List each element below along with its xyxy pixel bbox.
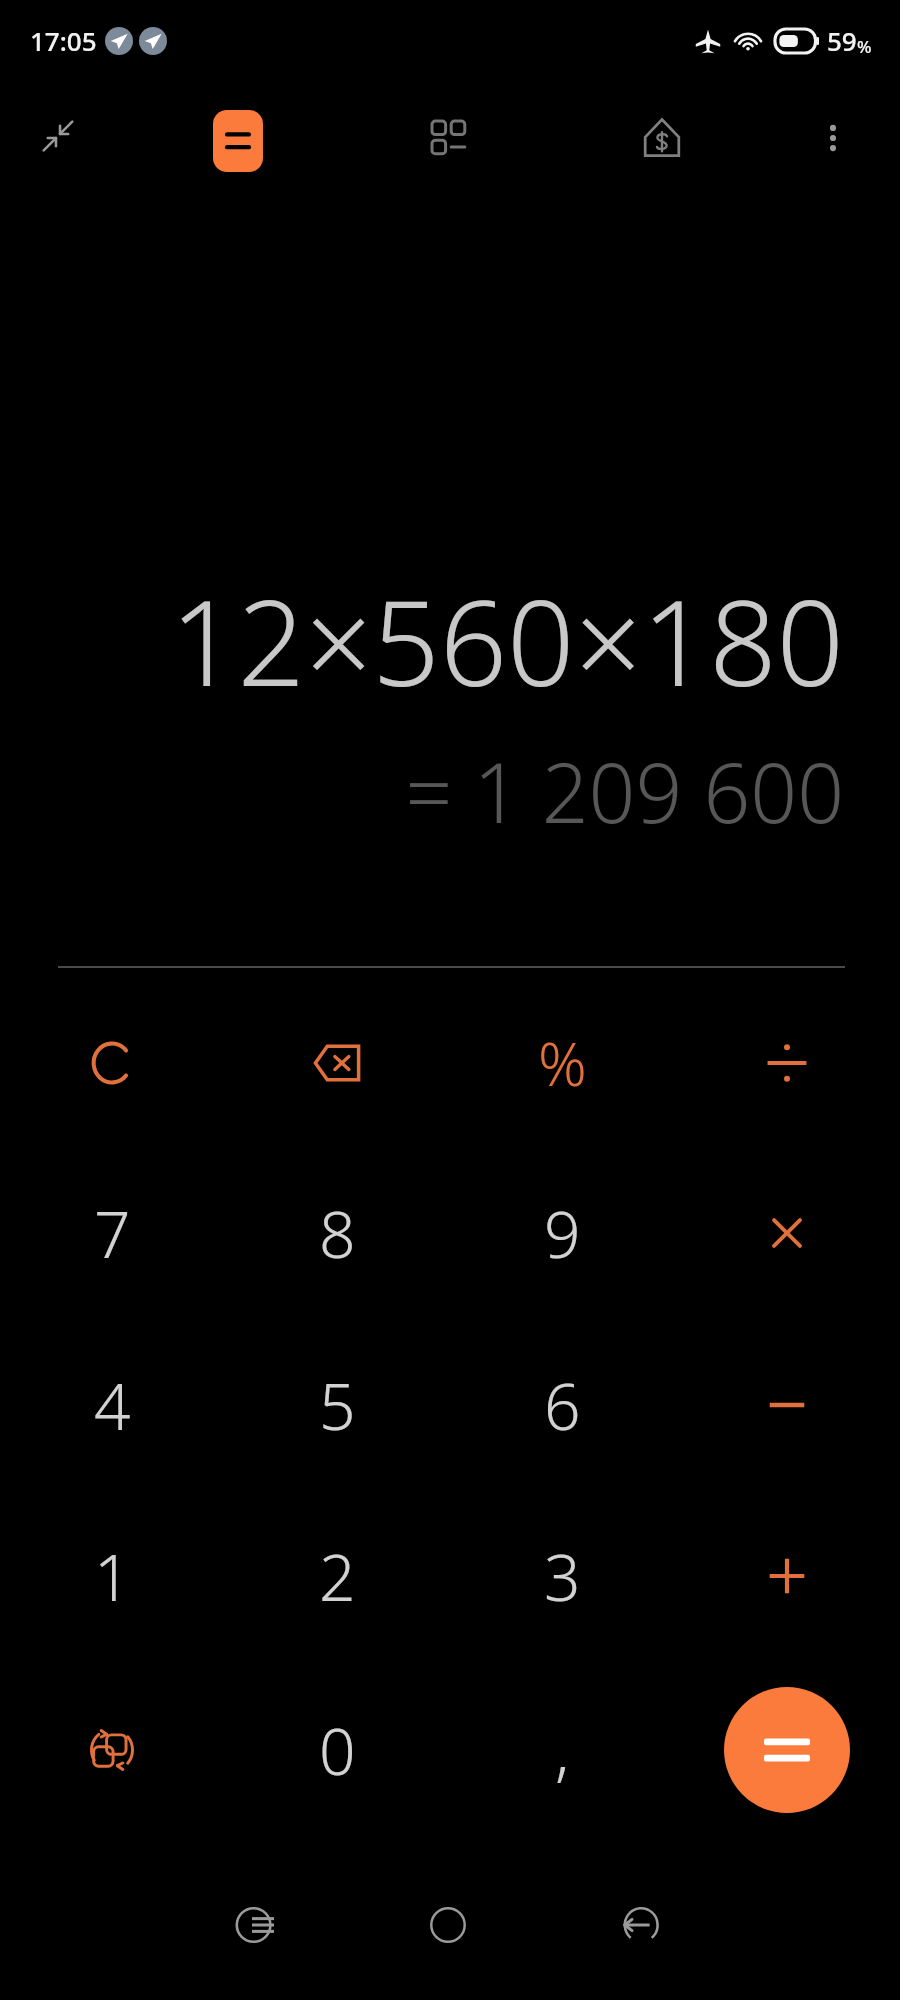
button[interactable]: Mortgage — [632, 108, 692, 168]
staticText: 12×560×180 — [170, 560, 844, 721]
staticText: , — [555, 1707, 570, 1794]
staticText: 9 — [544, 1190, 581, 1277]
button[interactable]: 8 — [257, 1153, 417, 1313]
staticText: % — [538, 1022, 587, 1104]
button[interactable]: Collapse — [30, 108, 86, 164]
button[interactable]: 5 — [257, 1325, 417, 1485]
staticText: 1 — [94, 1533, 131, 1620]
staticText: 3 — [544, 1533, 581, 1620]
button[interactable]: % — [482, 983, 642, 1143]
staticText: 17:05 — [30, 23, 97, 58]
button[interactable]: Back — [600, 1885, 680, 1965]
staticText: % — [857, 35, 872, 58]
button[interactable]: 9 — [482, 1153, 642, 1313]
button[interactable]: 6 — [482, 1325, 642, 1485]
button[interactable]: More options — [805, 110, 861, 166]
staticText: 7 — [94, 1190, 131, 1277]
staticText: 0 — [319, 1707, 356, 1794]
staticText: = 1 209 600 — [405, 735, 844, 847]
button[interactable]: Multiply — [707, 1153, 867, 1313]
button[interactable]: 0 — [257, 1670, 417, 1830]
staticText: 59 — [827, 23, 857, 58]
button[interactable]: Grid — [423, 112, 481, 170]
button[interactable]: 2 — [257, 1496, 417, 1656]
button[interactable]: Plus — [707, 1496, 867, 1656]
button[interactable]: Backspace — [257, 983, 417, 1143]
button[interactable]: Divide — [707, 983, 867, 1143]
button[interactable]: Unit converter — [32, 1670, 192, 1830]
button[interactable]: Minus — [707, 1325, 867, 1485]
button[interactable]: Calculator — [213, 110, 263, 172]
button[interactable]: 3 — [482, 1496, 642, 1656]
staticText: 5 — [319, 1362, 356, 1449]
button[interactable]: Equals — [724, 1687, 850, 1813]
staticText: 8 — [319, 1190, 356, 1277]
button[interactable]: , — [482, 1670, 642, 1830]
button[interactable]: 4 — [32, 1325, 192, 1485]
button[interactable]: 1 — [32, 1496, 192, 1656]
staticText: 2 — [319, 1533, 356, 1620]
button[interactable]: Recents — [216, 1885, 296, 1965]
staticText: 6 — [544, 1362, 581, 1449]
button[interactable]: Home — [408, 1885, 488, 1965]
button[interactable]: Clear — [32, 983, 192, 1143]
staticText: 4 — [94, 1362, 131, 1449]
button[interactable]: 7 — [32, 1153, 192, 1313]
